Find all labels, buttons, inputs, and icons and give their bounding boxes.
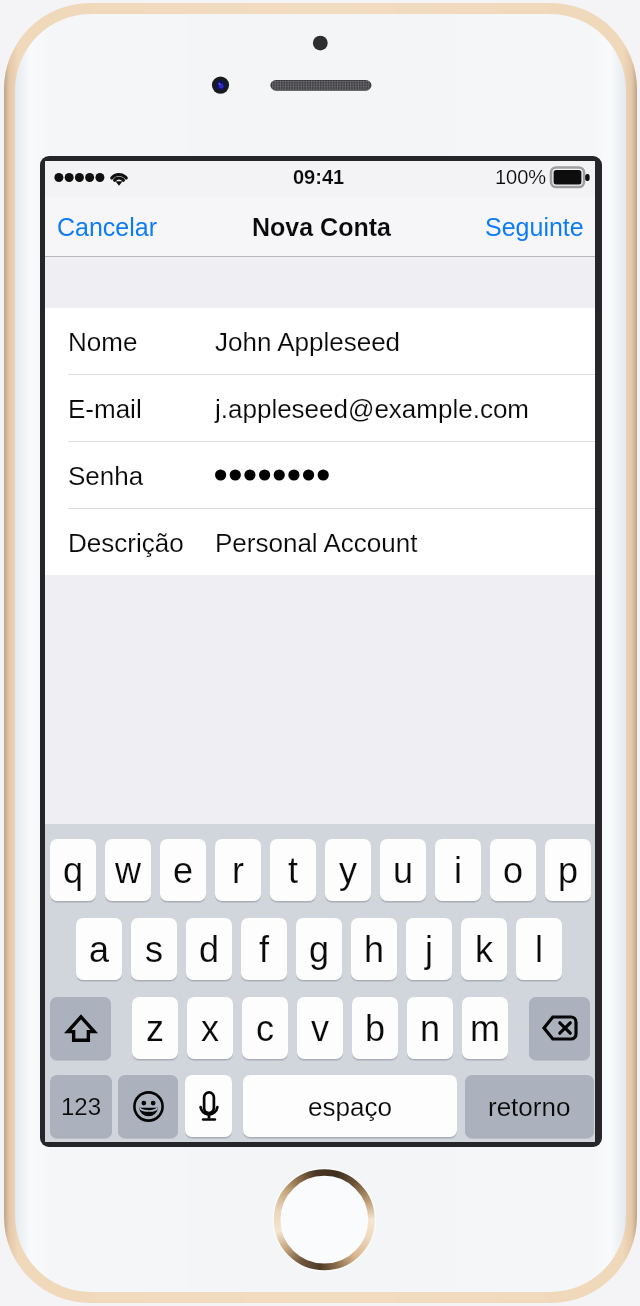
button[interactable]: o [490,839,536,903]
button[interactable]: Dictate [185,1075,232,1139]
button[interactable]: f [241,918,287,982]
button[interactable]: t [270,839,316,903]
button[interactable]: Nome [45,308,595,374]
button[interactable]: g [296,918,342,982]
other: Home [266,1162,379,1275]
staticText: espaço [308,1092,392,1121]
staticText: Cancelar [57,213,158,241]
button[interactable]: retorno [465,1075,594,1139]
staticText: j.appleseed@example.com [215,394,530,423]
button[interactable]: u [380,839,426,903]
staticText: p [558,850,579,890]
button[interactable]: E-mail [45,375,595,441]
staticText: e [173,850,194,890]
button[interactable]: m [462,997,508,1061]
button[interactable]: x [187,997,233,1061]
staticText: n [420,1008,441,1048]
staticText: John Appleseed [215,327,401,356]
staticText: 09:41 [293,166,345,188]
staticText: q [63,850,84,890]
staticText: 100% [495,166,547,188]
button[interactable]: n [407,997,453,1061]
staticText: Descrição [68,528,184,557]
button[interactable]: v [297,997,343,1061]
button[interactable]: 123 [50,1075,112,1139]
staticText: a [89,929,110,969]
staticText: m [470,1008,500,1048]
staticText: l [535,929,543,969]
staticText: u [393,850,414,890]
staticText: z [146,1008,164,1048]
staticText: d [199,929,220,969]
button[interactable]: w [105,839,151,903]
staticText: o [503,850,524,890]
button[interactable]: c [242,997,288,1061]
button[interactable]: p [545,839,591,903]
button[interactable]: i [435,839,481,903]
staticText: y [339,850,357,890]
staticText: x [201,1008,219,1048]
button[interactable]: h [351,918,397,982]
button[interactable]: espaço [243,1075,457,1139]
staticText: v [311,1008,329,1048]
staticText: b [365,1008,386,1048]
staticText: 123 [61,1093,102,1120]
staticText: Nova Conta [252,213,391,241]
staticText: Senha [68,461,144,490]
staticText: i [454,850,462,890]
staticText: k [475,929,493,969]
button[interactable]: y [325,839,371,903]
staticText: w [115,850,141,890]
button[interactable]: Backspace [529,997,590,1061]
button[interactable]: j [406,918,452,982]
button[interactable]: Senha [45,442,595,508]
staticText: t [288,850,299,890]
staticText: g [309,929,330,969]
staticText: j [425,929,433,969]
staticText: Seguinte [485,213,584,241]
button[interactable]: a [76,918,122,982]
staticText: Nome [68,327,138,356]
staticText: c [256,1008,274,1048]
staticText: s [145,929,163,969]
button[interactable]: b [352,997,398,1061]
button[interactable]: d [186,918,232,982]
button[interactable]: Cancelar [45,203,172,251]
button[interactable]: Emoji [118,1075,178,1139]
button[interactable]: l [516,918,562,982]
staticText: Personal Account [215,528,418,557]
button[interactable]: k [461,918,507,982]
staticText: E-mail [68,394,142,423]
button[interactable]: q [50,839,96,903]
staticText: r [232,850,244,890]
button[interactable]: Shift [50,997,111,1061]
button[interactable]: s [131,918,177,982]
staticText: h [364,929,385,969]
staticText: f [259,929,270,969]
button[interactable]: Seguinte [471,203,595,251]
button[interactable]: z [132,997,178,1061]
button[interactable]: e [160,839,206,903]
staticText: retorno [488,1092,571,1121]
button[interactable]: Descrição [45,509,595,575]
button[interactable]: r [215,839,261,903]
